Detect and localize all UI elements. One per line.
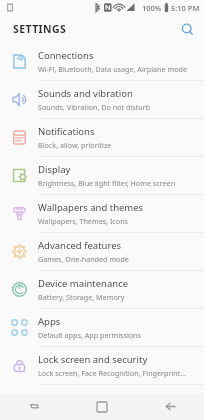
button[interactable]: Connections (0, 42, 204, 80)
staticText: Wi-Fi, Bluetooth, Data usage, Airplane m… (38, 64, 187, 74)
button[interactable]: Recents (14, 393, 54, 420)
button[interactable]: Search (176, 18, 198, 40)
staticText: Lock screen and security (38, 353, 148, 366)
staticText: Sounds and vibration (38, 87, 133, 100)
button[interactable]: Sounds and vibration (0, 81, 204, 118)
staticText: Display (38, 163, 71, 176)
staticText: Default apps, App permissions (38, 330, 141, 340)
staticText: Connections (38, 49, 94, 62)
staticText: Brightness, Blue light filter, Home scre… (38, 178, 176, 188)
staticText: Lock screen, Face Recognition, Fingerpri… (38, 368, 186, 378)
button[interactable]: Apps (0, 309, 204, 346)
button[interactable]: Device maintenance (0, 271, 204, 308)
staticText: 100% (142, 3, 162, 13)
button[interactable]: Back (150, 393, 190, 420)
button[interactable]: Display (0, 157, 204, 194)
staticText: Wallpapers, Themes, Icons (38, 216, 129, 226)
staticText: Apps (38, 315, 61, 328)
staticText: Device maintenance (38, 277, 129, 290)
staticText: Block, allow, prioritize (38, 140, 112, 150)
staticText: 5:10 PM (171, 3, 200, 13)
staticText: Sounds, Vibration, Do not disturb (38, 102, 151, 112)
staticText: Cloud and accounts (38, 390, 126, 403)
button[interactable]: Lock screen and security (0, 347, 204, 384)
button[interactable]: Notifications (0, 119, 204, 156)
staticText: SETTINGS (13, 22, 67, 36)
button[interactable]: Wallpapers and themes (0, 195, 204, 232)
staticText: Games, One-handed mode (38, 254, 129, 264)
staticText: Notifications (38, 125, 95, 138)
staticText: Battery, Storage, Memory (38, 292, 125, 302)
button[interactable]: Advanced features (0, 233, 204, 270)
staticText: Wallpapers and themes (38, 201, 144, 214)
button[interactable]: Home (82, 393, 122, 420)
staticText: Advanced features (38, 239, 122, 252)
staticText: Samsung Cloud, Backup and restore (38, 405, 161, 415)
button[interactable]: Cloud and accounts (0, 385, 204, 420)
